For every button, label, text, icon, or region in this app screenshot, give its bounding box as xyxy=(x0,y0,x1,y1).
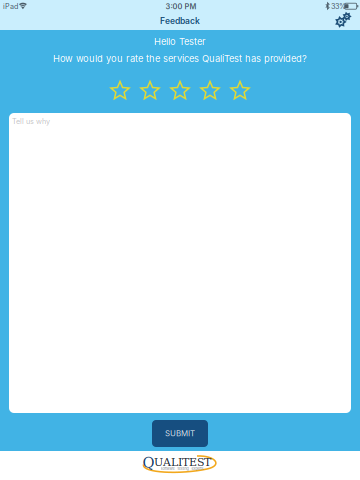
staticText: iPad xyxy=(3,2,18,11)
staticText: Q xyxy=(143,454,155,471)
button[interactable]: Rate 3 stars xyxy=(170,81,189,100)
staticText: SUBMIT xyxy=(165,429,195,438)
staticText: 3:00 PM xyxy=(165,2,196,11)
button[interactable]: Settings xyxy=(331,10,355,30)
button[interactable]: Rate 2 stars xyxy=(140,81,159,100)
staticText: Hello Tester xyxy=(154,36,206,47)
staticText: 33% xyxy=(331,2,346,11)
button[interactable]: Rate 5 stars xyxy=(230,81,249,100)
staticText: Feedback xyxy=(160,16,200,26)
staticText: How would you rate the services QualiTes… xyxy=(53,53,307,64)
button[interactable]: SUBMIT xyxy=(152,420,208,447)
staticText: Tell us why xyxy=(12,117,50,126)
button[interactable]: Rate 1 star xyxy=(110,81,129,100)
staticText: software testing experts xyxy=(160,466,203,471)
staticText: UALITEST xyxy=(154,456,211,468)
button[interactable]: Rate 4 stars xyxy=(200,81,219,100)
